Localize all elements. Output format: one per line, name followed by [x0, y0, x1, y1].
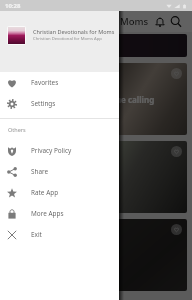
- staticText: Exit: [31, 230, 42, 239]
- button[interactable]: Share: [0, 161, 119, 182]
- staticText: 10:28: [5, 2, 21, 10]
- staticText: More Apps: [31, 209, 64, 218]
- button[interactable]: Favorite: [171, 224, 182, 235]
- staticText: Favorites: [31, 78, 59, 87]
- button[interactable]: More Apps: [0, 203, 119, 224]
- button[interactable]: Favorite: [171, 146, 182, 157]
- staticText: Others: [8, 126, 26, 133]
- button[interactable]: Settings: [0, 93, 119, 114]
- button[interactable]: Exit: [0, 224, 119, 245]
- button[interactable]: Rate App: [0, 182, 119, 203]
- staticText: Share: [31, 167, 49, 176]
- staticText: Rate App: [31, 188, 59, 197]
- staticText: When God is the calling: [61, 94, 155, 105]
- button[interactable]: Favorite: [171, 68, 182, 79]
- button[interactable]: Favorite: [5, 141, 187, 213]
- button[interactable]: Notifications: [153, 15, 167, 29]
- button[interactable]: Favorites: [0, 72, 119, 93]
- button[interactable]: Favorite: [5, 63, 187, 135]
- button[interactable]: Privacy Policy: [0, 140, 119, 161]
- staticText: Christian Devotional for Moms App: [33, 36, 102, 42]
- staticText: Settings: [31, 99, 56, 108]
- staticText: Privacy Policy: [31, 146, 72, 155]
- button[interactable]: Favorite: [5, 219, 187, 291]
- staticText: Christian Devotionals for Moms: [5, 15, 149, 28]
- staticText: Christian Devotionals for Moms: [33, 28, 115, 35]
- button[interactable]: [5, 34, 187, 57]
- button[interactable]: Search: [169, 15, 183, 29]
